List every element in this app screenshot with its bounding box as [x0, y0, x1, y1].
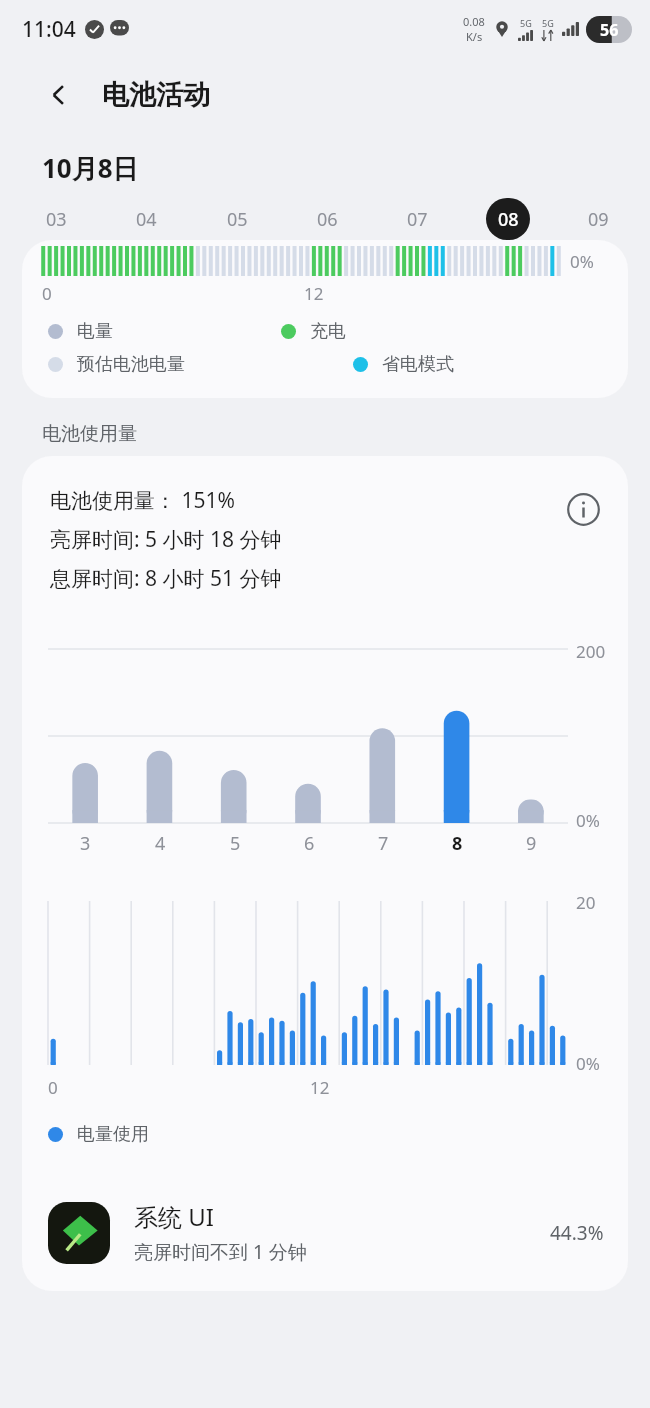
- button[interactable]: 0%: [22, 240, 628, 398]
- button[interactable]: 09: [576, 198, 620, 240]
- staticText: 20: [576, 891, 596, 914]
- staticText: 08: [498, 207, 519, 232]
- staticText: 5G: [520, 17, 532, 29]
- staticText: 电量使用: [77, 1123, 149, 1146]
- staticText: 0%: [576, 1052, 600, 1075]
- staticText: 0: [42, 282, 52, 305]
- staticText: 电池使用量： 151%: [50, 486, 235, 515]
- staticText: 03: [46, 207, 67, 232]
- staticText: K/s: [466, 29, 483, 44]
- button[interactable]: 06: [305, 198, 349, 240]
- staticText: 04: [136, 207, 157, 232]
- staticText: 06: [317, 207, 338, 232]
- staticText: 05: [227, 207, 248, 232]
- button[interactable]: 03: [34, 198, 78, 240]
- staticText: 56: [600, 19, 619, 41]
- staticText: 11:04: [22, 15, 76, 44]
- staticText: 7: [378, 831, 389, 856]
- button[interactable]: 08: [486, 198, 530, 240]
- staticText: 0: [48, 1076, 58, 1099]
- staticText: 系统 UI: [134, 1200, 214, 1233]
- staticText: 电池活动: [102, 78, 210, 112]
- staticText: 0.08: [463, 14, 485, 29]
- staticText: 电量: [77, 320, 113, 343]
- staticText: 充电: [310, 320, 346, 343]
- staticText: 09: [588, 207, 609, 232]
- staticText: 12: [310, 1076, 330, 1099]
- staticText: 电池使用量: [42, 422, 137, 446]
- staticText: 12: [304, 282, 324, 305]
- staticText: 5G: [542, 17, 554, 29]
- button[interactable]: Back: [36, 72, 82, 118]
- staticText: 6: [304, 831, 315, 856]
- staticText: 5: [230, 831, 241, 856]
- staticText: 4: [155, 831, 166, 856]
- staticText: 省电模式: [382, 353, 454, 376]
- button[interactable]: 07: [395, 198, 439, 240]
- staticText: 息屏时间: 8 小时 51 分钟: [50, 564, 282, 593]
- button[interactable]: 04: [124, 198, 168, 240]
- staticText: 0%: [576, 809, 600, 832]
- staticText: 9: [526, 831, 537, 856]
- staticText: 07: [407, 207, 428, 232]
- staticText: 44.3%: [550, 1220, 604, 1246]
- staticText: 200: [576, 640, 606, 663]
- staticText: 10月8日: [42, 150, 139, 186]
- staticText: 亮屏时间: 5 小时 18 分钟: [50, 525, 282, 554]
- button[interactable]: 系统 UI: [22, 1194, 628, 1271]
- staticText: 亮屏时间不到 1 分钟: [134, 1239, 307, 1265]
- staticText: 预估电池电量: [77, 353, 185, 376]
- staticText: 0%: [570, 250, 594, 273]
- button[interactable]: Info: [562, 488, 604, 530]
- staticText: 3: [80, 831, 91, 856]
- button[interactable]: 05: [215, 198, 259, 240]
- staticText: 8: [452, 831, 463, 856]
